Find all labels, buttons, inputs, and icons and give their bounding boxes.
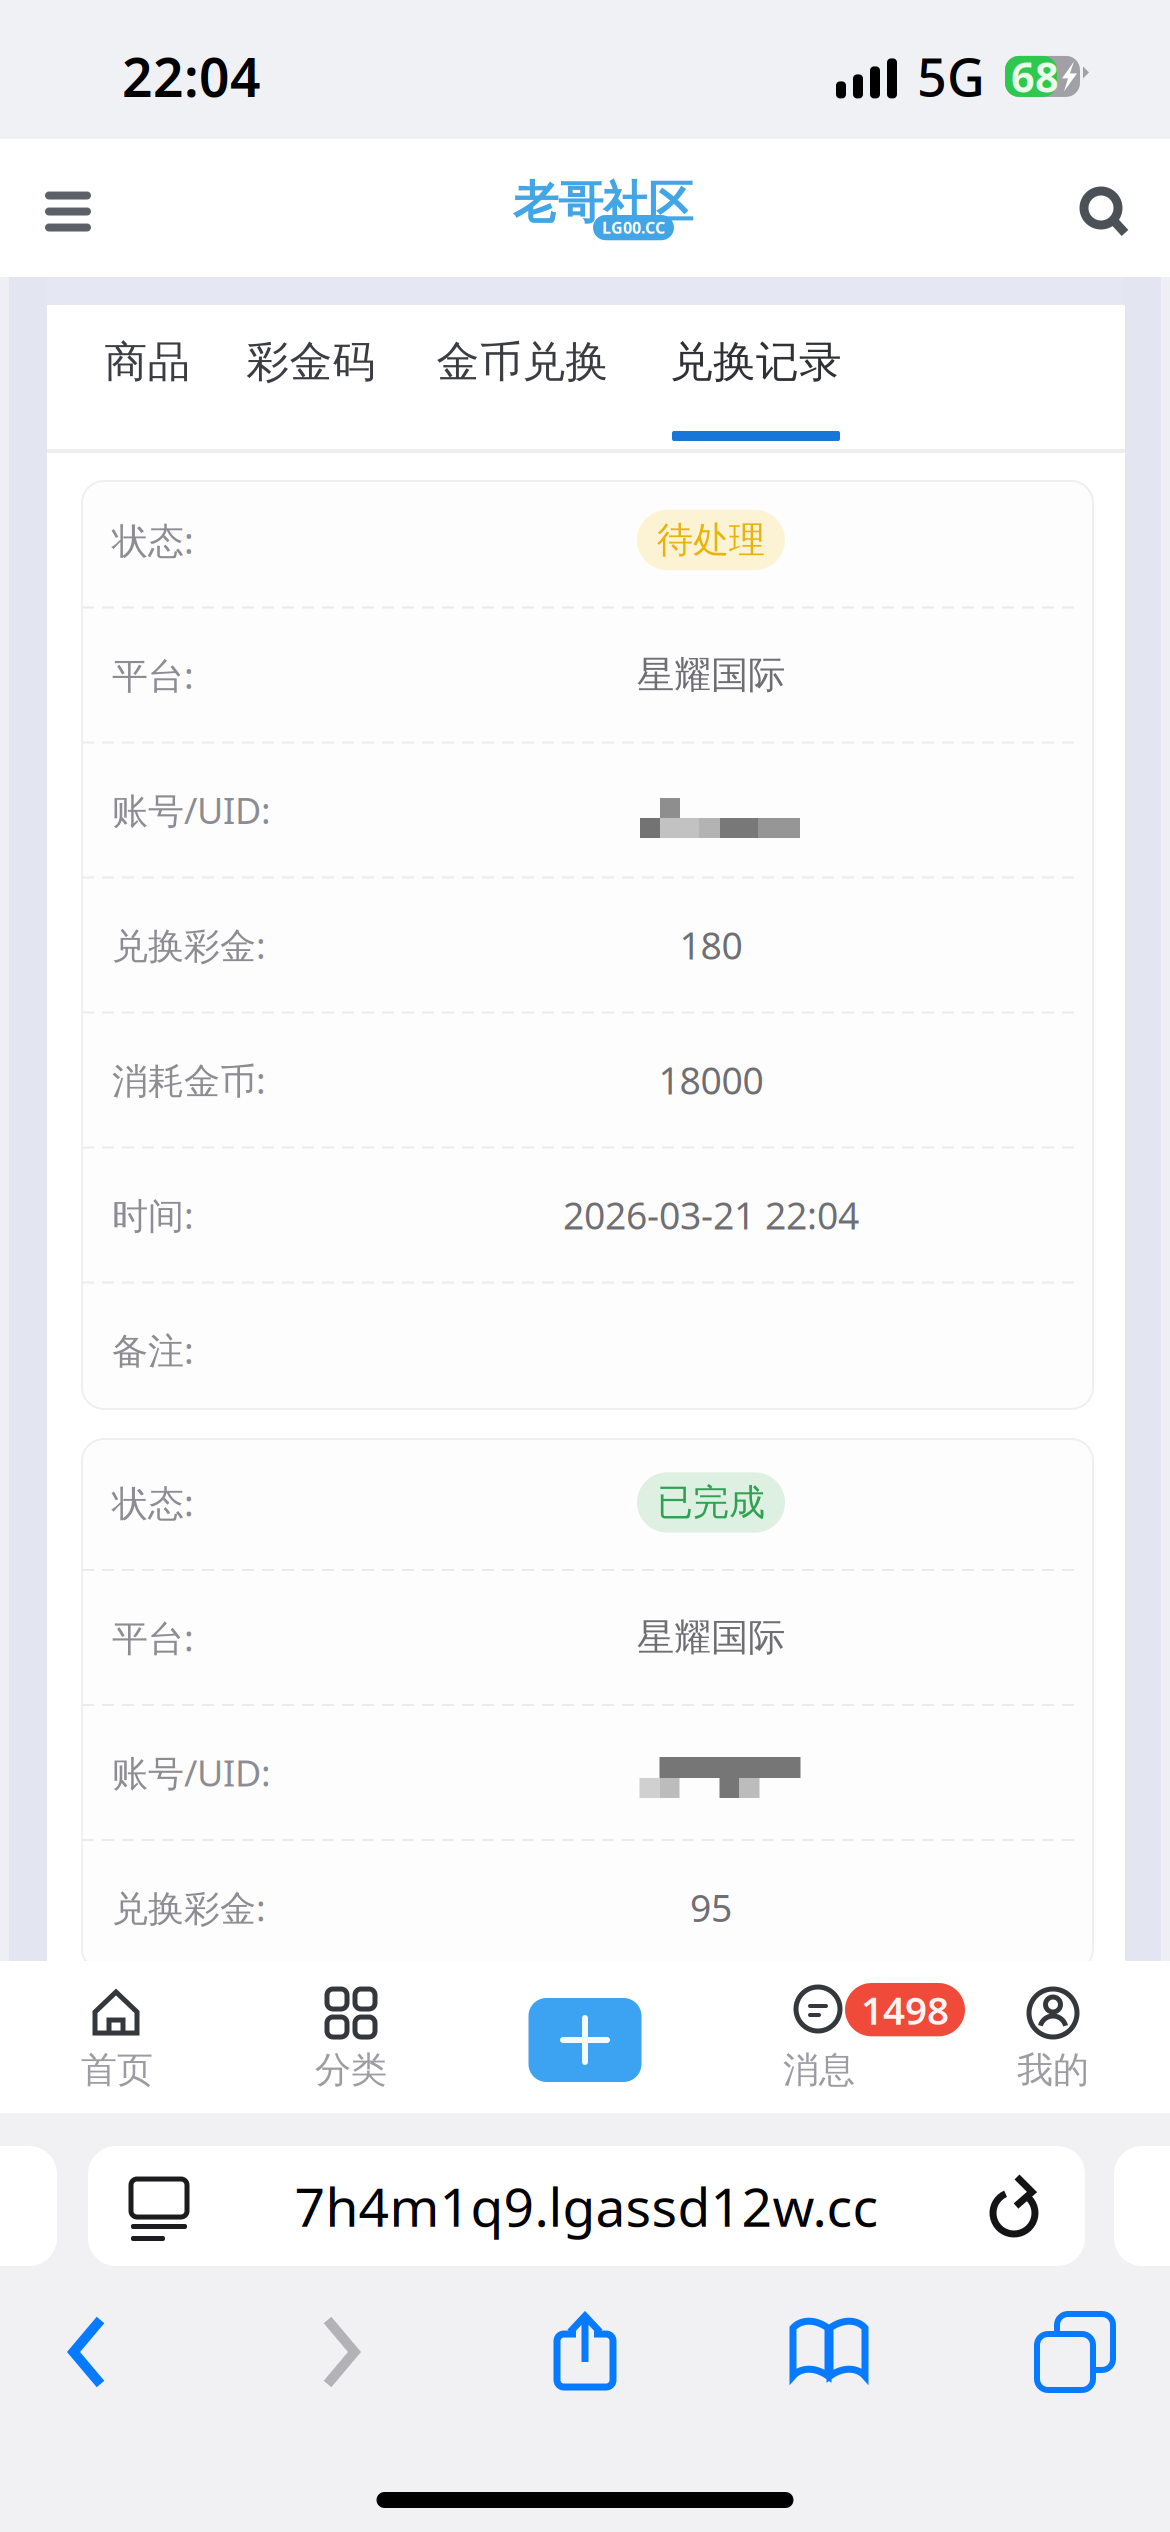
staticText: 老哥社区 bbox=[513, 175, 693, 231]
staticText: 我的 bbox=[1017, 2048, 1089, 2092]
staticText: 平台: bbox=[112, 1614, 194, 1661]
staticText: 68 bbox=[1011, 49, 1059, 104]
staticText: 待处理 bbox=[657, 518, 765, 562]
staticText: 彩金码 bbox=[246, 336, 375, 388]
staticText: 状态: bbox=[112, 516, 194, 564]
staticText: 账号/UID: bbox=[112, 786, 271, 834]
button[interactable]: 商品 bbox=[105, 305, 190, 453]
staticText: 1498 bbox=[861, 1984, 949, 2035]
staticText: 消耗金币: bbox=[112, 1056, 266, 1104]
button[interactable]: 兑换记录 bbox=[672, 305, 840, 453]
staticText: 已完成 bbox=[657, 1480, 765, 1525]
staticText: 分类 bbox=[315, 2048, 387, 2092]
button[interactable]: Tabs bbox=[1005, 2306, 1145, 2398]
button[interactable]: Forward bbox=[271, 2306, 411, 2398]
button[interactable]: 分类 bbox=[234, 1961, 468, 2113]
button[interactable]: 7h4m1q9.lgassd12w.cc bbox=[88, 2146, 1085, 2266]
button[interactable]: 金币兑换 bbox=[440, 305, 605, 453]
staticText: 时间: bbox=[112, 1191, 194, 1239]
button[interactable]: Share bbox=[515, 2306, 655, 2398]
staticText: 状态: bbox=[112, 1479, 194, 1526]
staticText: 星耀国际 bbox=[637, 652, 785, 698]
staticText: 2026-03-21 22:04 bbox=[563, 1190, 859, 1240]
staticText: 账号/UID: bbox=[112, 1749, 271, 1796]
button[interactable]: Search bbox=[1049, 139, 1133, 277]
staticText: 7h4m1q9.lgassd12w.cc bbox=[294, 2171, 878, 2241]
staticText: 平台: bbox=[112, 651, 194, 699]
staticText: LG00.CC bbox=[602, 217, 665, 238]
button[interactable]: Menu bbox=[45, 139, 137, 277]
staticText: 商品 bbox=[104, 336, 190, 388]
staticText: 金币兑换 bbox=[436, 336, 608, 388]
staticText: 兑换记录 bbox=[670, 336, 842, 388]
staticText: 兑换彩金: bbox=[112, 921, 266, 969]
staticText: 95 bbox=[690, 1883, 732, 1932]
staticText: 180 bbox=[679, 920, 742, 970]
button[interactable]: Back bbox=[17, 2306, 157, 2398]
staticText: 首页 bbox=[81, 2048, 153, 2092]
button[interactable]: 1498 bbox=[702, 1961, 936, 2113]
button[interactable]: Bookmarks bbox=[759, 2306, 899, 2398]
staticText: 消息 bbox=[783, 2048, 855, 2092]
button[interactable]: 我的 bbox=[936, 1961, 1170, 2113]
button[interactable]: 彩金码 bbox=[247, 305, 375, 453]
staticText: 兑换彩金: bbox=[112, 1884, 266, 1931]
staticText: 5G bbox=[917, 42, 985, 111]
button[interactable]: Post bbox=[468, 1961, 702, 2113]
staticText: 22:04 bbox=[122, 41, 261, 112]
button[interactable]: 首页 bbox=[0, 1961, 234, 2113]
staticText: 18000 bbox=[658, 1055, 763, 1105]
staticText: 备注: bbox=[112, 1326, 194, 1374]
staticText: 星耀国际 bbox=[637, 1615, 785, 1660]
